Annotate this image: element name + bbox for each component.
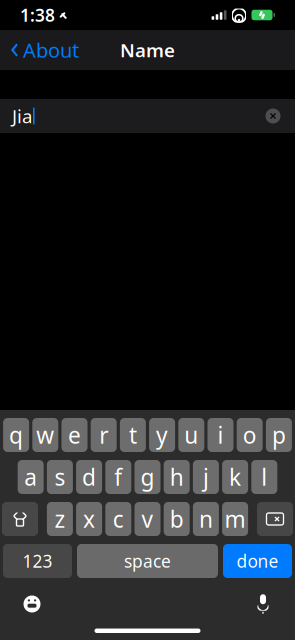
staticText: d (82, 462, 96, 492)
staticText: g (140, 462, 154, 492)
button[interactable]: r (91, 418, 117, 452)
staticText: q (9, 420, 23, 450)
button[interactable]: m (222, 502, 248, 536)
staticText: space (124, 549, 171, 572)
button[interactable]: Shift (2, 502, 38, 536)
button[interactable]: a (18, 460, 44, 494)
staticText: p (272, 420, 286, 450)
button[interactable]: d (76, 460, 102, 494)
staticText: About (23, 37, 79, 63)
button[interactable]: l (251, 460, 277, 494)
staticText: f (114, 462, 122, 492)
staticText: h (170, 462, 184, 492)
staticText: u (184, 420, 198, 450)
staticText: b (170, 504, 184, 534)
staticText: a (24, 462, 37, 492)
staticText: w (36, 420, 54, 450)
button[interactable]: u (178, 418, 204, 452)
staticText: x (83, 504, 95, 534)
staticText: done (236, 549, 278, 572)
button[interactable]: n (193, 502, 219, 536)
button[interactable]: c (105, 502, 131, 536)
button[interactable]: f (105, 460, 131, 494)
button[interactable]: w (32, 418, 58, 452)
staticText: o (243, 420, 257, 450)
button[interactable]: y (149, 418, 175, 452)
button[interactable]: s (47, 460, 73, 494)
staticText: i (217, 420, 223, 450)
button[interactable]: e (61, 418, 87, 452)
staticText: z (54, 504, 65, 534)
button[interactable]: v (134, 502, 160, 536)
staticText: e (68, 420, 81, 450)
button[interactable]: k (222, 460, 248, 494)
staticText: m (225, 504, 246, 534)
button[interactable]: done (223, 544, 292, 578)
button[interactable]: Emoji keyboard (14, 589, 50, 619)
button[interactable]: Dictation (245, 589, 281, 619)
staticText: s (54, 462, 65, 492)
button[interactable]: b (164, 502, 190, 536)
staticText: y (156, 420, 168, 450)
staticText: v (141, 504, 153, 534)
staticText: Name (120, 38, 175, 62)
staticText: 1:38 (20, 3, 55, 26)
staticText: c (113, 504, 124, 534)
staticText: Jia (12, 104, 32, 128)
button[interactable]: j (193, 460, 219, 494)
button[interactable]: Clear text (259, 102, 287, 130)
staticText: j (203, 462, 209, 492)
button[interactable]: x (76, 502, 102, 536)
staticText: t (129, 420, 137, 450)
staticText: n (199, 504, 213, 534)
button[interactable]: p (266, 418, 292, 452)
button[interactable]: Delete (257, 502, 293, 536)
button[interactable]: o (237, 418, 263, 452)
button[interactable]: 123 (3, 544, 72, 578)
button[interactable]: space (77, 544, 218, 578)
button[interactable]: h (164, 460, 190, 494)
button[interactable]: About (0, 29, 79, 71)
button[interactable]: z (47, 502, 73, 536)
staticText: k (229, 462, 241, 492)
button[interactable]: t (120, 418, 146, 452)
button[interactable]: q (3, 418, 29, 452)
staticText: r (99, 420, 108, 450)
staticText: 123 (22, 549, 52, 572)
staticText: l (261, 462, 267, 492)
button[interactable]: i (207, 418, 233, 452)
button[interactable]: g (134, 460, 160, 494)
